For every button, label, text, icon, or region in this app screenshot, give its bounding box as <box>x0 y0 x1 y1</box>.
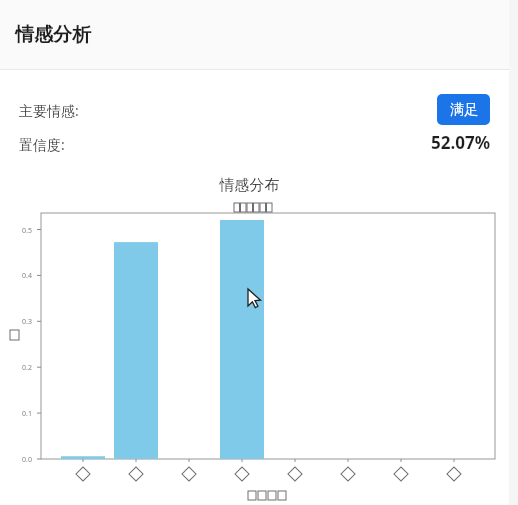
staticText: 0.3 <box>22 317 32 327</box>
staticText: 情感分布 <box>0 176 499 195</box>
staticText: 0.4 <box>22 271 32 281</box>
button[interactable]: 满足 <box>437 94 490 125</box>
staticText: 52.07% <box>431 131 491 154</box>
staticText: 满足 <box>450 101 478 119</box>
staticText: 0.1 <box>22 409 32 419</box>
staticText: 情感分析 <box>15 23 91 47</box>
staticText: 置信度: <box>19 135 65 154</box>
staticText: 0.0 <box>22 455 32 465</box>
staticText: 0.5 <box>22 226 32 236</box>
staticText: 0.2 <box>22 363 32 373</box>
staticText: 主要情感: <box>19 101 79 120</box>
